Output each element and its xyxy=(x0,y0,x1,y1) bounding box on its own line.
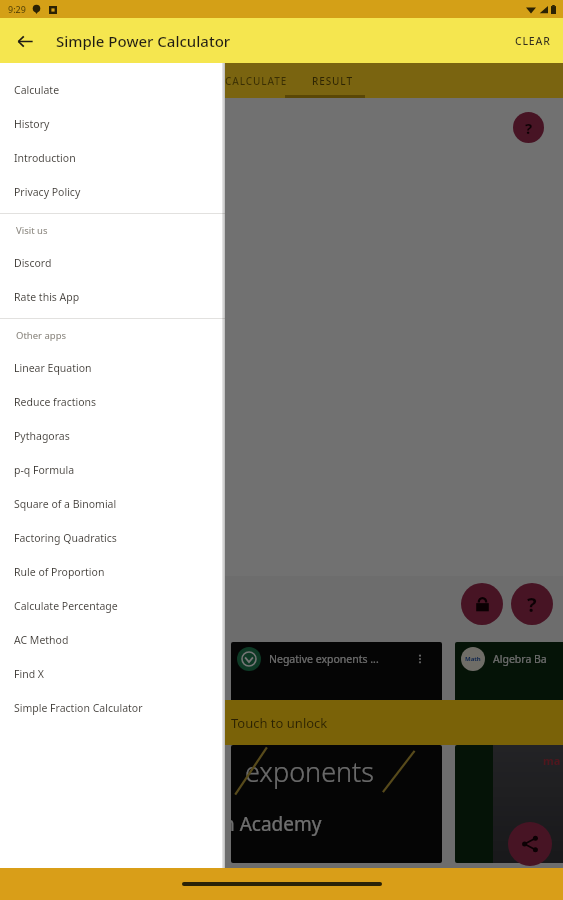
staticText: History xyxy=(14,117,50,131)
staticText: RESULT xyxy=(312,74,353,88)
staticText: Touch to unlock xyxy=(231,714,328,732)
button[interactable]: CLEAR xyxy=(503,26,563,56)
button[interactable]: Calculate Percentage xyxy=(0,589,225,623)
staticText: Negative exponents ... xyxy=(269,652,410,666)
staticText: ? xyxy=(527,591,537,618)
button[interactable]: Linear Equation xyxy=(0,351,225,385)
button[interactable]: CALCULATE xyxy=(225,63,288,98)
staticText: RESULT xyxy=(193,74,234,88)
staticText: AC Method xyxy=(14,633,69,647)
button[interactable]: RESULT xyxy=(193,63,234,98)
staticText: Discord xyxy=(14,256,52,270)
staticText: Other apps xyxy=(16,329,67,342)
staticText: n Academy xyxy=(231,811,322,837)
staticText: Reduce fractions xyxy=(14,395,97,409)
button[interactable]: Privacy Policy xyxy=(0,175,225,209)
staticText: Pythagoras xyxy=(14,429,70,443)
button[interactable]: Factoring Quadratics xyxy=(0,521,225,555)
staticText: Factoring Quadratics xyxy=(14,531,117,545)
button[interactable]: Help xyxy=(513,112,544,143)
button[interactable]: Touch to unlock xyxy=(0,700,563,745)
button[interactable]: Calculate xyxy=(0,73,225,107)
staticText: CLEAR xyxy=(515,34,551,48)
button[interactable]: Share xyxy=(508,822,552,866)
button[interactable]: RESULT xyxy=(312,63,353,98)
staticText: CALCULATE xyxy=(225,74,288,88)
staticText: Introduction xyxy=(14,151,76,165)
button[interactable]: History xyxy=(0,107,225,141)
staticText: Simple Power Calculator xyxy=(56,31,231,51)
staticText: Calculate xyxy=(14,83,60,97)
staticText: Calculate Percentage xyxy=(14,599,118,613)
button[interactable]: Math xyxy=(455,642,563,704)
button[interactable]: Rate this App xyxy=(0,280,225,314)
staticText: Linear Equation xyxy=(14,361,92,375)
staticText: Rule of Proportion xyxy=(14,565,105,579)
button[interactable]: Unlock xyxy=(461,583,503,625)
button[interactable]: Square of a Binomial xyxy=(0,487,225,521)
staticText: exponents xyxy=(245,753,374,790)
button[interactable]: Help xyxy=(511,583,553,625)
button[interactable]: Simple Fraction Calculator xyxy=(0,691,225,725)
button[interactable]: Rule of Proportion xyxy=(0,555,225,589)
staticText: Square of a Binomial xyxy=(14,497,117,511)
staticText: Simple Fraction Calculator xyxy=(14,701,143,715)
button[interactable]: Reduce fractions xyxy=(0,385,225,419)
button[interactable]: Discord xyxy=(0,246,225,280)
staticText: 9:29 xyxy=(8,3,26,15)
button[interactable]: p-q Formula xyxy=(0,453,225,487)
staticText: p-q Formula xyxy=(14,463,75,477)
staticText: Math xyxy=(465,655,481,663)
button[interactable]: Pythagoras xyxy=(0,419,225,453)
button[interactable]: Negative exponents ... xyxy=(231,642,442,704)
staticText: ma xyxy=(543,753,561,768)
staticText: Find X xyxy=(14,667,44,681)
button[interactable]: Find X xyxy=(0,657,225,691)
button[interactable]: ma xyxy=(455,745,563,863)
button[interactable]: Introduction xyxy=(0,141,225,175)
staticText: Rate this App xyxy=(14,290,80,304)
staticText: Privacy Policy xyxy=(14,185,81,199)
button[interactable]: Back xyxy=(10,26,40,56)
button[interactable]: AC Method xyxy=(0,623,225,657)
button[interactable]: exponents xyxy=(231,745,442,863)
staticText: ? xyxy=(525,118,533,138)
staticText: Algebra Ba xyxy=(493,652,563,666)
staticText: Visit us xyxy=(16,224,48,237)
